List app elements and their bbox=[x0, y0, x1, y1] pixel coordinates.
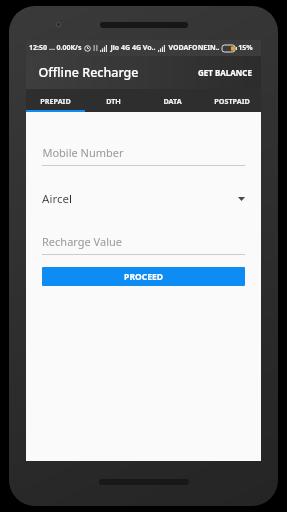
staticText: PREPAID bbox=[40, 96, 71, 106]
staticText: DTH bbox=[106, 96, 121, 106]
staticText: DATA bbox=[163, 96, 182, 106]
button[interactable]: Offline Recharge bbox=[26, 58, 145, 87]
button[interactable]: DATA bbox=[143, 89, 202, 112]
staticText: 15% bbox=[238, 43, 253, 53]
staticText: Jio 4G 4G Vo.. bbox=[110, 43, 156, 53]
staticText: Mobile Number bbox=[42, 145, 124, 160]
staticText: Recharge Value bbox=[42, 234, 122, 249]
button[interactable]: PROCEED bbox=[42, 267, 245, 286]
button[interactable]: Recharge Value bbox=[42, 234, 245, 255]
staticText: Aircel bbox=[42, 191, 72, 207]
button[interactable]: GET BALANCE bbox=[189, 60, 261, 85]
staticText: PROCEED bbox=[124, 271, 163, 283]
staticText: ... bbox=[49, 43, 55, 53]
button[interactable]: PREPAID bbox=[26, 89, 84, 112]
staticText: 0.00K/s bbox=[56, 43, 82, 53]
staticText: GET BALANCE bbox=[198, 67, 252, 78]
staticText: VODAFONEIN.. bbox=[168, 43, 220, 53]
staticText: 12:50 bbox=[29, 43, 47, 53]
staticText: POSTPAID bbox=[214, 96, 250, 106]
staticText: Offline Recharge bbox=[38, 64, 139, 81]
button[interactable]: DTH bbox=[84, 89, 143, 112]
button[interactable]: Mobile Number bbox=[42, 145, 245, 166]
button[interactable]: Select operator, Aircel bbox=[42, 191, 245, 207]
button[interactable]: POSTPAID bbox=[202, 89, 261, 112]
